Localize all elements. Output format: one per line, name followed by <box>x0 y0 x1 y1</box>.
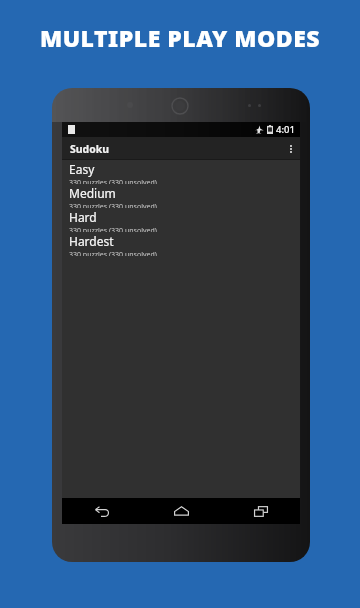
staticText: 330 puzzles (330 unsolved) <box>69 250 157 256</box>
staticText: 330 puzzles (330 unsolved) <box>69 178 157 184</box>
staticText: 330 puzzles (330 unsolved) <box>69 226 157 232</box>
button[interactable]: Sudoku <box>62 137 300 160</box>
button[interactable]: Hardest <box>62 232 300 256</box>
button[interactable]: Medium <box>62 184 300 208</box>
button[interactable]: Back <box>62 498 142 524</box>
button[interactable]: Hard <box>62 208 300 232</box>
staticText: MULTIPLE PLAY MODES <box>0 22 360 53</box>
button[interactable]: Easy <box>62 160 300 184</box>
staticText: 4:01 <box>276 123 295 136</box>
staticText: Easy <box>69 161 95 177</box>
button[interactable]: More options <box>282 137 300 160</box>
staticText: Sudoku <box>70 142 110 156</box>
staticText: Hard <box>69 209 97 225</box>
button[interactable]: Home <box>142 498 221 524</box>
staticText: 330 puzzles (330 unsolved) <box>69 202 157 208</box>
staticText: Medium <box>69 185 116 201</box>
button[interactable]: Recent apps <box>221 498 300 524</box>
staticText: Hardest <box>69 233 114 249</box>
